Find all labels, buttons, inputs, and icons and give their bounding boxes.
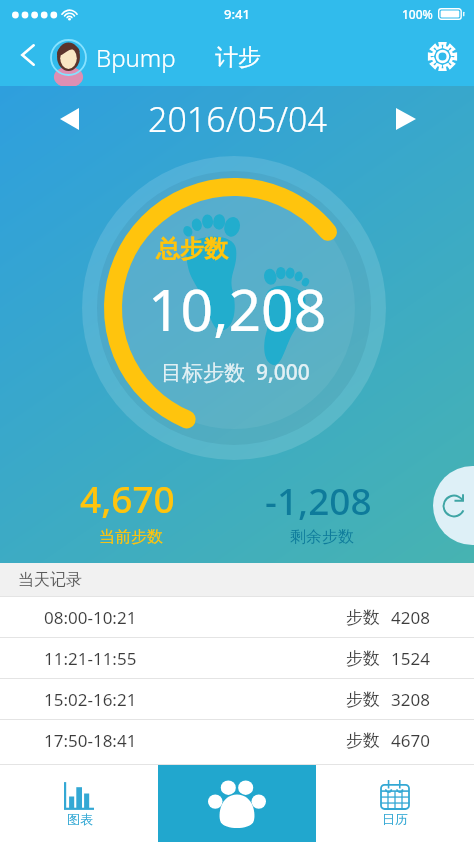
staticText: 当天记录	[18, 570, 82, 590]
staticText: 剩余步数	[290, 527, 354, 547]
button[interactable]: 08:00-10:21	[0, 597, 474, 637]
button[interactable]: 15:02-16:21	[0, 679, 474, 719]
staticText: 15:02-16:21	[44, 688, 137, 711]
staticText: 目标步数 9,000	[161, 358, 310, 387]
staticText: Bpump	[96, 41, 176, 74]
staticText: 4670	[391, 729, 430, 752]
staticText: 08:00-10:21	[44, 606, 137, 629]
button[interactable]: 日历	[316, 765, 474, 842]
button[interactable]: Bpump	[50, 36, 176, 78]
staticText: 10,208	[148, 270, 327, 348]
staticText: 17:50-18:41	[44, 729, 137, 752]
staticText: 当前步数	[99, 527, 163, 547]
button[interactable]	[240, 470, 405, 555]
button[interactable]: Steps	[158, 765, 316, 842]
staticText: 步数	[346, 689, 380, 710]
staticText: 总步数	[156, 234, 228, 264]
button[interactable]: Previous day	[45, 95, 93, 143]
staticText: 100%	[402, 6, 433, 22]
staticText: 计步	[215, 43, 261, 72]
staticText: 步数	[346, 607, 380, 628]
staticText: 4,670	[80, 473, 175, 523]
staticText: 2016/05/04	[148, 96, 327, 142]
button[interactable]: 图表	[0, 765, 158, 842]
staticText: 3208	[391, 688, 430, 711]
staticText: 步数	[346, 730, 380, 751]
staticText: 4208	[391, 606, 430, 629]
button[interactable]: 17:50-18:41	[0, 720, 474, 760]
button[interactable]: Settings	[423, 37, 461, 75]
button[interactable]: 11:21-11:55	[0, 638, 474, 678]
staticText: 图表	[67, 811, 93, 827]
staticText: 步数	[346, 648, 380, 669]
staticText: 11:21-11:55	[44, 647, 137, 670]
staticText: -1,208	[265, 475, 372, 525]
button[interactable]: Next day	[382, 95, 430, 143]
button[interactable]	[40, 470, 220, 555]
button[interactable]: Back	[11, 38, 45, 72]
staticText: 日历	[382, 811, 408, 827]
button[interactable]: Refresh	[433, 466, 474, 545]
staticText: 1524	[391, 647, 430, 670]
staticText: 9:41	[224, 5, 250, 23]
